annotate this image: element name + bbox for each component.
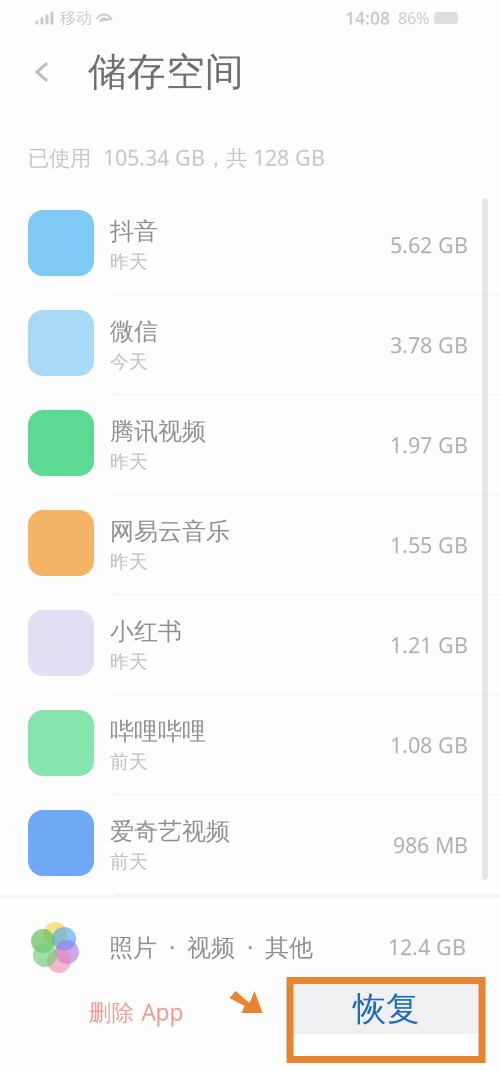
staticText: 今天 (110, 350, 148, 373)
staticText: 哔哩哔哩 (110, 717, 206, 746)
staticText: 1.08 GB (390, 731, 468, 759)
staticText: 腾讯视频 (110, 417, 206, 446)
staticText: 已使用 105.34 GB，共 128 GB (28, 143, 325, 172)
button[interactable]: 返回 (22, 42, 62, 102)
button[interactable]: 删除 App (76, 990, 196, 1034)
staticText: 1.55 GB (390, 531, 468, 559)
staticText: 爱奇艺视频 (110, 817, 230, 846)
staticText: 微信 (110, 317, 158, 346)
button[interactable]: 照片 · 视频 · 其他 (0, 899, 500, 995)
staticText: 1.21 GB (390, 631, 468, 659)
staticText: 移动 (60, 8, 92, 28)
staticText: 删除 App (88, 997, 183, 1027)
staticText: 前天 (110, 750, 148, 773)
staticText: 3.78 GB (390, 331, 468, 359)
staticText: 12.4 GB (388, 933, 466, 961)
staticText: 恢复 (353, 988, 419, 1029)
staticText: 昨天 (110, 650, 148, 673)
button[interactable]: 小红书 (0, 595, 500, 695)
staticText: 86% (398, 7, 429, 29)
staticText: 小红书 (110, 617, 182, 646)
staticText: 网易云音乐 (110, 517, 230, 546)
staticText: 昨天 (110, 250, 148, 273)
button[interactable]: 恢复 (286, 977, 485, 1063)
button[interactable]: 抖音 (0, 195, 500, 295)
staticText: 抖音 (110, 217, 158, 246)
staticText: 照片 · 视频 · 其他 (109, 931, 313, 963)
button[interactable]: 网易云音乐 (0, 495, 500, 595)
staticText: 5.62 GB (390, 231, 468, 259)
staticText: 前天 (110, 850, 148, 873)
staticText: 1.97 GB (390, 431, 468, 459)
button[interactable]: 哔哩哔哩 (0, 695, 500, 795)
button[interactable]: 腾讯视频 (0, 395, 500, 495)
button[interactable]: 微信 (0, 295, 500, 395)
staticText: 14:08 (345, 6, 390, 29)
staticText: 昨天 (110, 450, 148, 473)
button[interactable]: 爱奇艺视频 (0, 795, 500, 895)
staticText: 昨天 (110, 550, 148, 573)
staticText: 986 MB (393, 831, 468, 859)
staticText: 储存空间 (88, 48, 244, 96)
